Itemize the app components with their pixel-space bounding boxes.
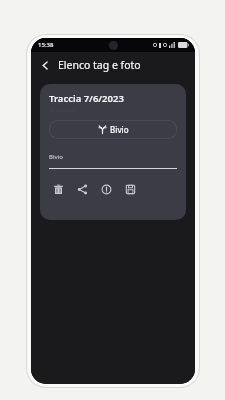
button[interactable]: Info bbox=[97, 180, 115, 198]
staticText: Bivio bbox=[110, 124, 129, 135]
staticText: 15:38 bbox=[38, 41, 54, 49]
staticText: Elenco tag e foto bbox=[58, 58, 141, 72]
button[interactable]: Delete bbox=[49, 180, 67, 198]
staticText: Bivio bbox=[49, 153, 63, 161]
button[interactable]: Bivio bbox=[49, 120, 177, 139]
button[interactable]: Traccia 7/6/2023 bbox=[40, 84, 186, 220]
button[interactable]: Share bbox=[73, 180, 91, 198]
button[interactable]: Back bbox=[35, 55, 55, 75]
staticText: Traccia 7/6/2023 bbox=[49, 92, 124, 105]
button[interactable]: Save bbox=[121, 180, 139, 198]
